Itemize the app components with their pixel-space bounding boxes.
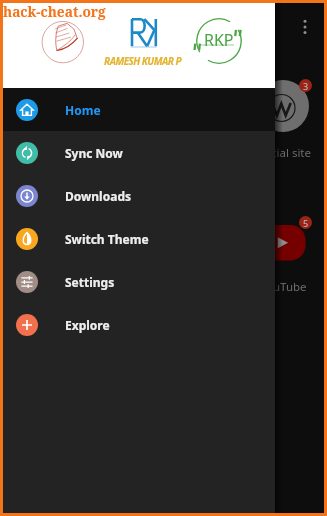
button[interactable]: Home bbox=[3, 88, 275, 131]
button[interactable]: Settings bbox=[3, 260, 275, 303]
staticText: cial site bbox=[271, 145, 312, 161]
button[interactable]: Explore bbox=[3, 303, 275, 346]
staticText: Downloads bbox=[65, 188, 131, 204]
button[interactable]: YouTube bbox=[258, 220, 310, 262]
staticText: 3 bbox=[303, 80, 309, 92]
staticText: RAMESH KUMAR P bbox=[104, 54, 181, 68]
staticText: Settings bbox=[65, 274, 115, 290]
staticText: uTube bbox=[273, 279, 307, 295]
button[interactable]: Sync Now bbox=[3, 131, 275, 174]
staticText: Sync Now bbox=[65, 145, 123, 161]
staticText: hack-cheat.org bbox=[3, 2, 106, 21]
staticText: RKP bbox=[204, 29, 234, 51]
staticText: 5 bbox=[303, 217, 309, 229]
button[interactable]: WordPress official site bbox=[253, 80, 315, 142]
staticText: Switch Theme bbox=[65, 231, 149, 247]
staticText: Home bbox=[65, 102, 101, 118]
staticText: Explore bbox=[65, 317, 110, 333]
button[interactable]: More options bbox=[293, 15, 317, 39]
button[interactable]: Downloads bbox=[3, 174, 275, 217]
button[interactable]: Switch Theme bbox=[3, 217, 275, 260]
